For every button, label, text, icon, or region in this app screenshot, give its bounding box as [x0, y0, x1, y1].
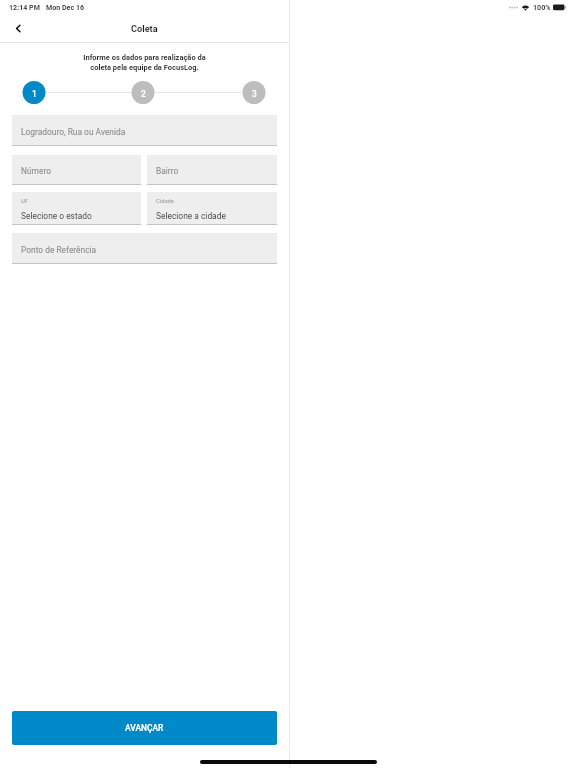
- staticText: Informe os dados para realização da cole…: [83, 53, 206, 71]
- button[interactable]: 1: [22, 81, 46, 104]
- button[interactable]: Cidade: [147, 192, 277, 225]
- button[interactable]: Bairro: [147, 155, 277, 185]
- staticText: Número: [21, 166, 51, 176]
- staticText: 100%: [533, 3, 551, 11]
- staticText: 3: [252, 89, 257, 99]
- staticText: Cidade: [156, 198, 174, 205]
- button[interactable]: AVANÇAR: [12, 711, 277, 745]
- button[interactable]: Back: [0, 15, 36, 42]
- staticText: 12:14 PM: [9, 3, 40, 11]
- staticText: AVANÇAR: [125, 723, 164, 733]
- button[interactable]: Logradouro, Rua ou Avenida: [12, 115, 277, 146]
- staticText: Bairro: [156, 166, 179, 176]
- staticText: Selecione a cidade: [156, 211, 226, 221]
- staticText: Mon Dec 16: [46, 3, 85, 11]
- staticText: Ponto de Referência: [21, 245, 97, 255]
- staticText: 2: [141, 89, 146, 99]
- staticText: Logradouro, Rua ou Avenida: [21, 127, 126, 137]
- button[interactable]: Ponto de Referência: [12, 233, 277, 264]
- button[interactable]: UF: [12, 192, 141, 225]
- button[interactable]: Número: [12, 155, 141, 185]
- staticText: Selecione o estado: [21, 211, 92, 221]
- staticText: UF: [21, 198, 28, 205]
- button[interactable]: 3: [242, 81, 266, 104]
- button[interactable]: 2: [131, 81, 155, 104]
- staticText: 1: [32, 89, 37, 99]
- staticText: Coleta: [131, 23, 158, 34]
